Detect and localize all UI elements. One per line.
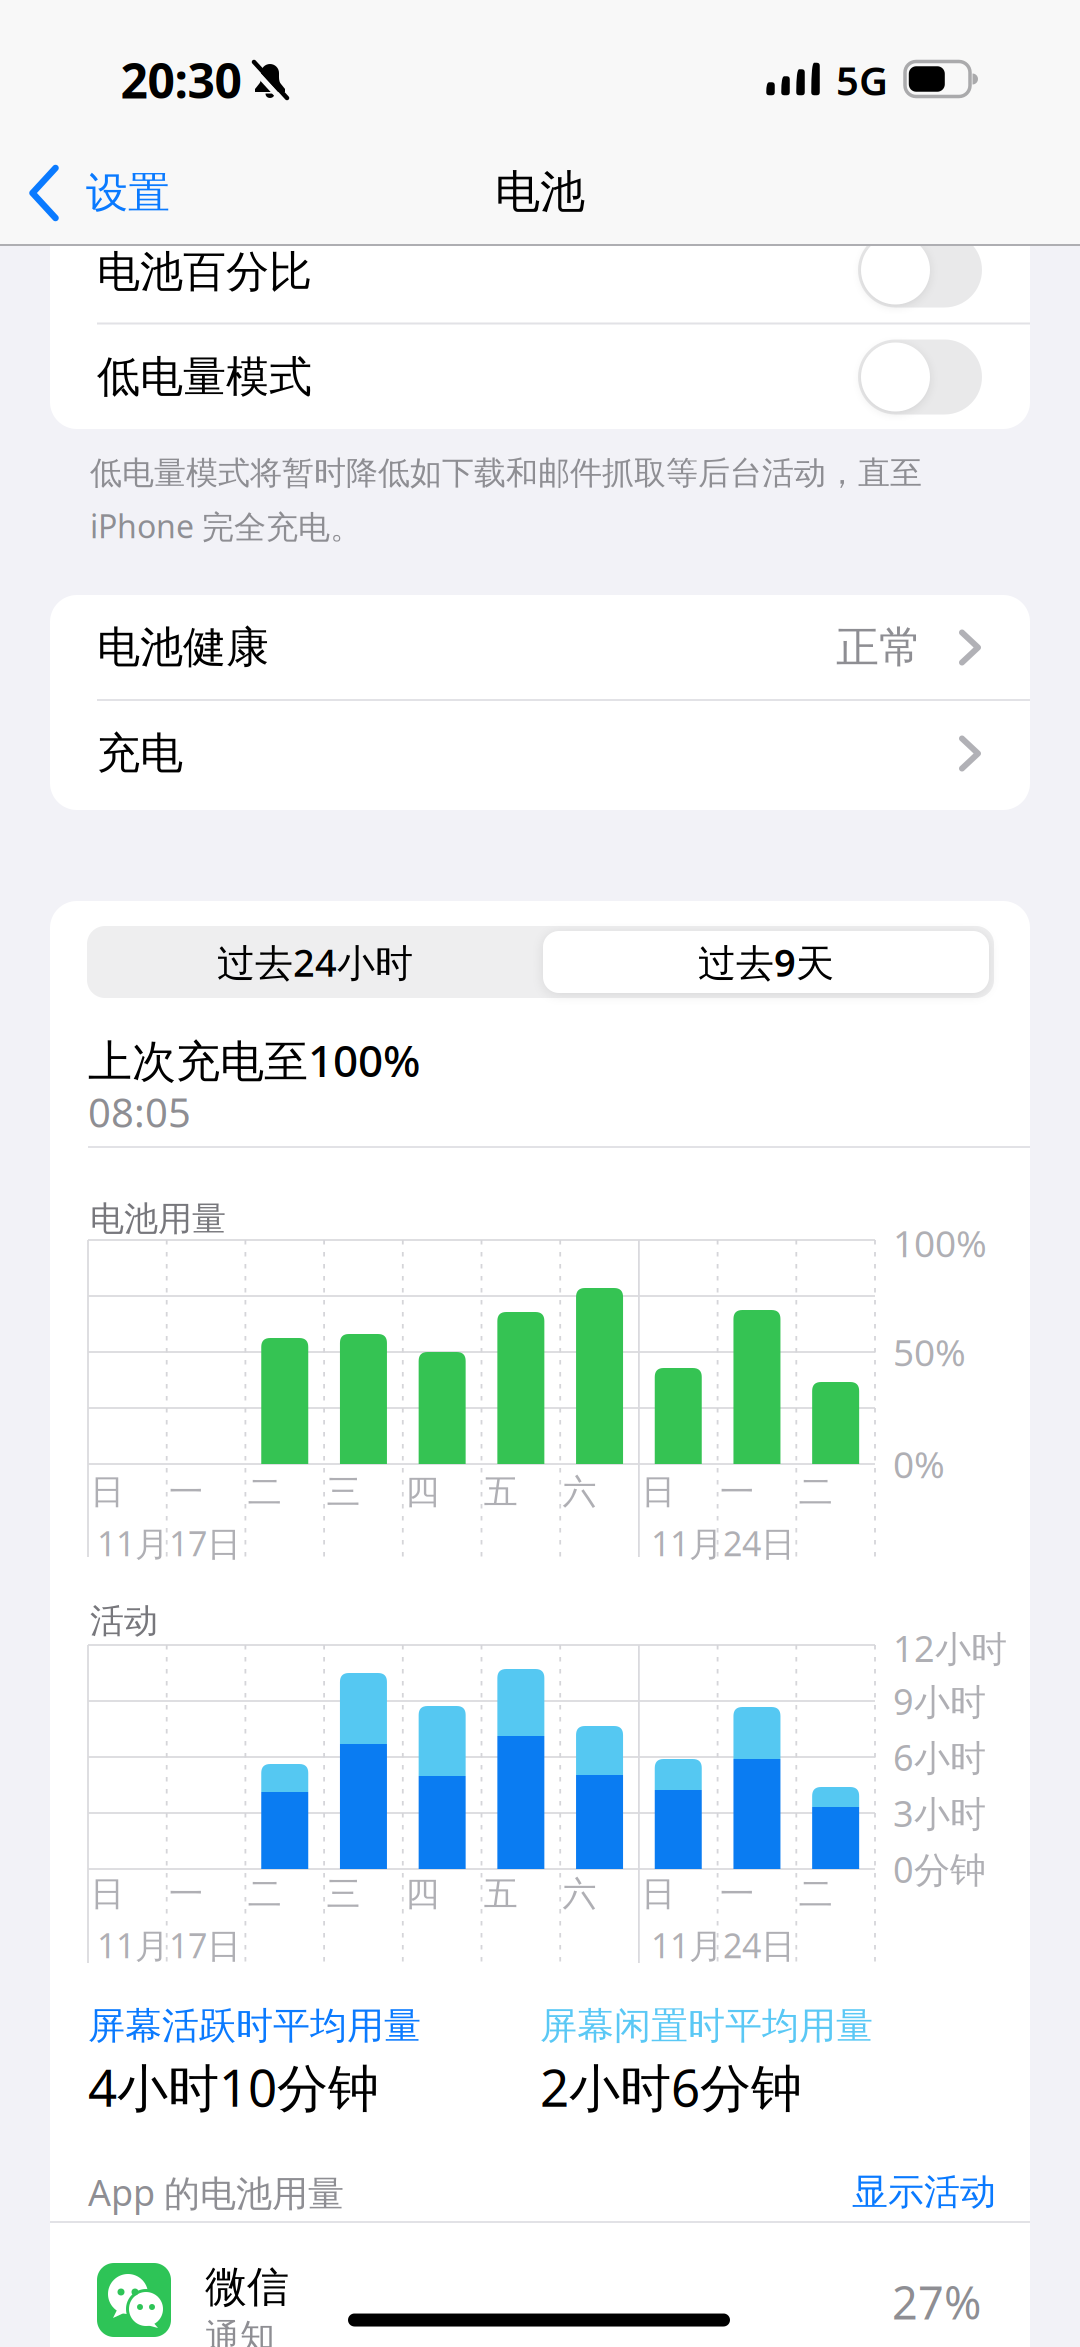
staticText: 四: [405, 1873, 439, 1915]
staticText: 27%: [892, 2272, 981, 2332]
staticText: 充电: [97, 727, 183, 780]
staticText: 11月17日: [97, 1922, 241, 1968]
button[interactable]: [858, 232, 982, 307]
staticText: 电池用量: [90, 1198, 226, 1240]
staticText: App 的电池用量: [88, 2168, 344, 2216]
staticText: 11月24日: [651, 1520, 795, 1566]
staticText: 通知: [205, 2315, 275, 2347]
staticText: 六: [562, 1471, 596, 1513]
staticText: 屏幕闲置时平均用量: [540, 2003, 873, 2049]
staticText: 设置: [86, 167, 170, 219]
staticText: 屏幕活跃时平均用量: [88, 2003, 421, 2049]
staticText: 0分钟: [893, 1845, 986, 1893]
staticText: 2小时6分钟: [540, 2053, 802, 2121]
staticText: 4小时10分钟: [88, 2053, 379, 2121]
staticText: 日: [90, 1873, 124, 1915]
staticText: 五: [484, 1873, 518, 1915]
staticText: 11月24日: [651, 1922, 795, 1968]
staticText: 3小时: [893, 1789, 986, 1837]
staticText: 9小时: [893, 1677, 986, 1725]
staticText: 六: [562, 1873, 596, 1915]
staticText: 5G: [836, 53, 888, 106]
staticText: 四: [405, 1471, 439, 1513]
staticText: 100%: [893, 1218, 987, 1267]
button[interactable]: 过去24小时: [91, 926, 539, 998]
button[interactable]: 显示活动: [852, 2170, 996, 2214]
staticText: 日: [641, 1471, 675, 1513]
button[interactable]: 微信: [50, 2230, 1030, 2347]
staticText: 50%: [893, 1327, 966, 1376]
staticText: 一: [169, 1471, 203, 1513]
staticText: 上次充电至100%: [88, 1031, 420, 1089]
staticText: 20:30: [120, 48, 241, 112]
staticText: 6小时: [893, 1733, 986, 1781]
staticText: 一: [169, 1873, 203, 1915]
staticText: 二: [799, 1873, 833, 1915]
staticText: 二: [799, 1471, 833, 1513]
staticText: 五: [484, 1471, 518, 1513]
staticText: 微信: [205, 2261, 289, 2313]
button[interactable]: 过去9天: [542, 929, 990, 995]
staticText: 日: [90, 1471, 124, 1513]
staticText: 三: [326, 1873, 360, 1915]
staticText: 低电量模式将暂时降低如下载和邮件抓取等后台活动，直至: [90, 453, 922, 493]
staticText: 低电量模式: [97, 351, 312, 403]
staticText: 二: [248, 1471, 282, 1513]
button[interactable]: 设置: [28, 162, 288, 224]
staticText: 显示活动: [852, 2170, 996, 2214]
staticText: iPhone 完全充电。: [90, 505, 362, 547]
staticText: 电池: [495, 164, 585, 220]
staticText: 电池百分比: [97, 246, 312, 298]
button[interactable]: 充电: [50, 701, 1030, 806]
staticText: 过去24小时: [217, 937, 413, 987]
staticText: 二: [248, 1873, 282, 1915]
button[interactable]: [858, 339, 982, 414]
staticText: 11月17日: [97, 1520, 241, 1566]
staticText: 过去9天: [698, 937, 834, 987]
staticText: 12小时: [893, 1624, 1007, 1672]
staticText: 一: [720, 1471, 754, 1513]
staticText: 0%: [893, 1439, 945, 1488]
staticText: 活动: [90, 1600, 158, 1642]
staticText: 一: [720, 1873, 754, 1915]
staticText: 正常: [836, 621, 922, 674]
staticText: 电池健康: [97, 621, 269, 674]
button[interactable]: 电池健康: [50, 595, 1030, 700]
staticText: 日: [641, 1873, 675, 1915]
staticText: 三: [326, 1471, 360, 1513]
staticText: 08:05: [88, 1085, 191, 1138]
